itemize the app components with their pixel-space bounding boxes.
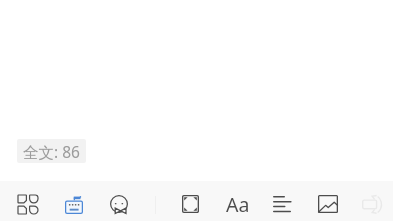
- button[interactable]: Apps: [18, 195, 38, 214]
- button[interactable]: Keyboard: [65, 195, 83, 214]
- staticText: 全文: 86: [23, 141, 80, 162]
- button[interactable]: Picture: [318, 195, 338, 213]
- staticText: Aa: [226, 191, 250, 218]
- button[interactable]: 全文: 86: [17, 139, 86, 163]
- button[interactable]: Paragraph: [273, 196, 292, 212]
- button[interactable]: Page layout: [182, 195, 199, 213]
- button[interactable]: More: [362, 195, 382, 214]
- button[interactable]: Emoji: [110, 195, 128, 214]
- button[interactable]: Font size: [226, 191, 250, 218]
